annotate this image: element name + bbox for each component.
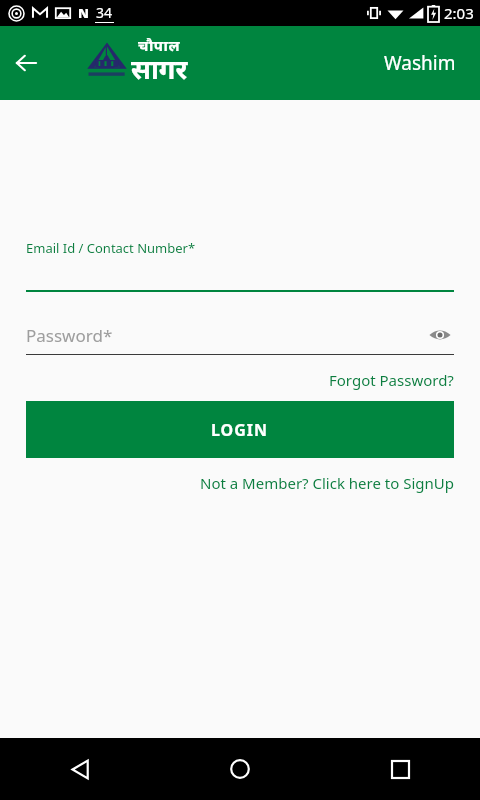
- staticText: LOGIN: [211, 419, 269, 441]
- button[interactable]: Email Id / Contact Number*: [26, 239, 454, 292]
- staticText: N: [78, 4, 89, 22]
- staticText: Password*: [26, 324, 426, 347]
- staticText: 2:03: [444, 3, 474, 23]
- button[interactable]: Recents: [320, 738, 480, 800]
- button[interactable]: Forgot Password?: [329, 370, 454, 390]
- staticText: Washim: [384, 50, 456, 76]
- button[interactable]: Back: [0, 37, 52, 89]
- button[interactable]: Show password: [426, 321, 454, 349]
- staticText: चौपाल: [138, 35, 181, 55]
- button[interactable]: Home: [160, 738, 320, 800]
- staticText: 34: [96, 3, 113, 22]
- staticText: Email Id / Contact Number*: [26, 239, 196, 257]
- button[interactable]: LOGIN: [26, 401, 454, 458]
- button[interactable]: Password*: [26, 321, 454, 355]
- button[interactable]: Back: [0, 738, 160, 800]
- staticText: सागर: [131, 50, 188, 87]
- button[interactable]: Not a Member? Click here to SignUp: [200, 473, 454, 493]
